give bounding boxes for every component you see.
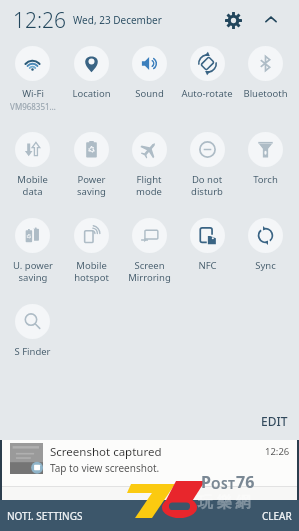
button[interactable]: Torch <box>236 126 294 212</box>
staticText: 12:26 <box>265 445 290 458</box>
button[interactable]: U. power saving <box>3 212 62 298</box>
staticText: Screenshot captured <box>50 444 162 460</box>
staticText: Bluetooth <box>243 87 288 100</box>
staticText: U. power saving <box>13 259 53 284</box>
staticText: CLEAR <box>262 509 292 523</box>
staticText: P <box>201 471 211 493</box>
staticText: Screen Mirroring <box>128 259 171 284</box>
button[interactable]: Screenshot captured <box>2 440 297 486</box>
button[interactable]: Screen Mirroring <box>120 212 178 298</box>
staticText: 12:26 <box>13 6 67 35</box>
staticText: Sound <box>135 87 164 100</box>
button[interactable]: EDIT <box>247 406 299 436</box>
staticText: NFC <box>198 259 217 272</box>
staticText: NOTI. SETTINGS <box>7 509 83 523</box>
button[interactable]: Collapse <box>251 0 290 40</box>
staticText: Wed, 23 December <box>73 13 162 27</box>
staticText: Sync <box>255 259 276 272</box>
staticText: Do not disturb <box>191 173 223 198</box>
staticText: S Finder <box>14 345 51 358</box>
staticText: Flight mode <box>136 173 162 198</box>
button[interactable]: Sound <box>120 40 178 126</box>
button[interactable]: Auto-rotate <box>178 40 236 126</box>
staticText: 76 <box>236 471 255 493</box>
staticText: 玩 樂 網 <box>198 491 251 511</box>
button[interactable]: NOTI. SETTINGS <box>0 504 90 528</box>
button[interactable]: CLEAR <box>255 504 299 528</box>
button[interactable]: Wi-Fi <box>3 40 62 126</box>
button[interactable]: NFC <box>178 212 236 298</box>
button[interactable]: Sync <box>236 212 294 298</box>
staticText: Location <box>72 87 111 100</box>
staticText: Auto-rotate <box>181 87 233 100</box>
staticText: Mobile data <box>17 173 48 198</box>
staticText: Mobile hotspot <box>74 259 109 284</box>
button[interactable]: Bluetooth <box>236 40 294 126</box>
button[interactable]: Mobile data <box>3 126 62 212</box>
staticText: OST <box>211 476 236 492</box>
staticText: EDIT <box>261 413 288 429</box>
button[interactable]: Flight mode <box>120 126 178 212</box>
button[interactable]: S Finder <box>3 298 62 384</box>
staticText: Wi-Fi <box>22 87 44 100</box>
staticText: Torch <box>253 173 278 186</box>
staticText: VM968351… <box>10 101 56 112</box>
button[interactable]: Power saving <box>62 126 120 212</box>
staticText: Power saving <box>77 173 106 198</box>
button[interactable]: Settings <box>215 0 251 40</box>
staticText: Tap to view screenshot. <box>50 461 160 475</box>
button[interactable]: Do not disturb <box>178 126 236 212</box>
button[interactable]: Mobile hotspot <box>62 212 120 298</box>
button[interactable]: Location <box>62 40 120 126</box>
